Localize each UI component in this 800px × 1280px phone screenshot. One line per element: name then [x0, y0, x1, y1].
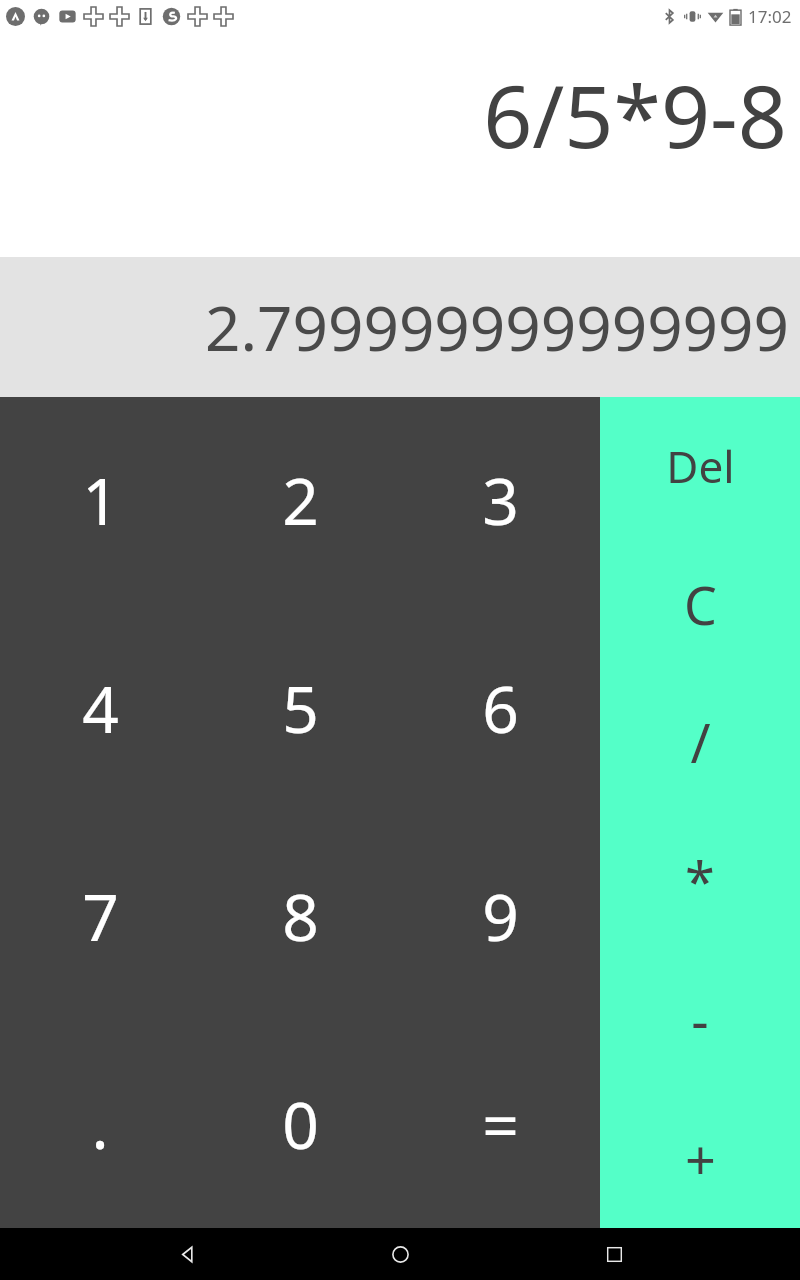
- button[interactable]: 3: [400, 397, 600, 604]
- staticText: 6/5*9-8: [483, 56, 787, 173]
- staticText: =: [482, 1081, 519, 1168]
- button[interactable]: -: [600, 950, 800, 1089]
- staticText: .: [91, 1081, 109, 1168]
- button[interactable]: =: [400, 1020, 600, 1228]
- staticText: +: [685, 1122, 716, 1196]
- button[interactable]: Back: [158, 1228, 214, 1280]
- button[interactable]: Recent apps: [586, 1228, 642, 1280]
- button[interactable]: 0: [200, 1020, 400, 1228]
- button[interactable]: 7: [0, 812, 200, 1020]
- staticText: 2: [282, 457, 319, 544]
- button[interactable]: /: [600, 673, 800, 811]
- button[interactable]: Del: [600, 397, 800, 535]
- button[interactable]: 2.799999999999999: [0, 257, 800, 397]
- button[interactable]: 6: [400, 604, 600, 812]
- staticText: 7: [82, 873, 119, 960]
- staticText: 5: [282, 665, 319, 752]
- button[interactable]: Home: [372, 1228, 428, 1280]
- staticText: 4: [82, 665, 119, 752]
- staticText: C: [684, 569, 717, 640]
- button[interactable]: *: [600, 811, 800, 950]
- staticText: 8: [282, 873, 319, 960]
- staticText: 9: [482, 873, 519, 960]
- button[interactable]: 8: [200, 812, 400, 1020]
- staticText: 17:02: [748, 5, 792, 28]
- button[interactable]: 4: [0, 604, 200, 812]
- staticText: 0: [282, 1081, 319, 1168]
- staticText: -: [691, 983, 709, 1057]
- staticText: *: [685, 844, 715, 918]
- staticText: 1: [82, 457, 119, 544]
- staticText: Del: [666, 436, 735, 496]
- staticText: /: [690, 705, 711, 779]
- staticText: 6: [482, 665, 519, 752]
- staticText: 3: [482, 457, 519, 544]
- button[interactable]: 2: [200, 397, 400, 604]
- button[interactable]: C: [600, 535, 800, 673]
- button[interactable]: +: [600, 1089, 800, 1228]
- button[interactable]: 6/5*9-8: [0, 32, 800, 257]
- button[interactable]: 9: [400, 812, 600, 1020]
- button[interactable]: 1: [0, 397, 200, 604]
- staticText: 2.799999999999999: [204, 285, 789, 369]
- button[interactable]: .: [0, 1020, 200, 1228]
- button[interactable]: 5: [200, 604, 400, 812]
